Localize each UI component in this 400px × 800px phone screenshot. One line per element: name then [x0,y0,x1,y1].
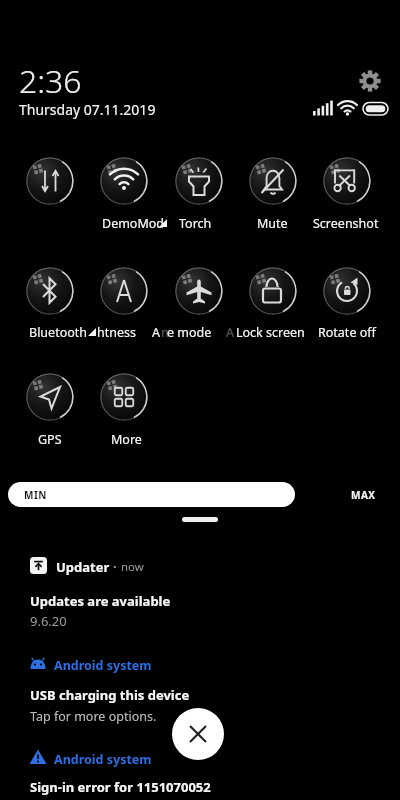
button[interactable] [175,157,223,205]
button[interactable] [100,267,148,315]
button[interactable] [323,157,371,205]
staticText: now [121,559,144,575]
staticText: GPS [38,431,62,448]
button[interactable] [323,267,371,315]
staticText: Thursday 07.11.2019 [19,100,156,119]
button[interactable]: MIN [8,482,295,507]
button[interactable] [26,373,74,421]
button[interactable] [26,157,74,205]
staticText: htness [97,324,136,341]
staticText: Tap for more options. [30,708,157,725]
button[interactable] [249,157,297,205]
button[interactable] [0,742,400,800]
staticText: Lock screen [236,324,305,341]
staticText: A [226,324,234,341]
staticText: 2:36 [19,59,82,103]
staticText: Bluetooth [29,324,88,341]
staticText: DemoMod [102,215,165,232]
staticText: Android system [54,657,152,674]
staticText: Torch [179,215,212,232]
staticText: Rotate off [318,324,376,341]
staticText: USB charging this device [30,686,190,704]
staticText: n [161,324,169,341]
staticText: More [111,431,142,448]
button[interactable] [0,545,400,635]
button[interactable] [175,267,223,315]
staticText: MAX [351,488,376,502]
button[interactable] [249,267,297,315]
staticText: A [152,324,160,341]
staticText: Mute [257,215,288,232]
button[interactable] [172,708,224,760]
button[interactable] [359,70,381,92]
staticText: Android system [54,751,152,768]
staticText: Sign-in error for 1151070052 [30,778,211,796]
button[interactable] [0,648,400,726]
staticText: Updates are available [30,592,171,610]
staticText: Updater [56,558,110,576]
staticText: 9.6.20 [30,612,67,630]
button[interactable] [100,373,148,421]
staticText: · [113,557,117,575]
button[interactable] [26,267,74,315]
staticText: MIN [24,488,47,502]
button[interactable] [182,517,218,522]
button[interactable] [100,157,148,205]
staticText: Screenshot [313,215,379,232]
staticText: e mode [167,324,212,341]
